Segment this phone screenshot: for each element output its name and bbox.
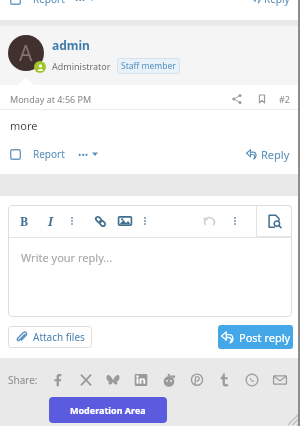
button[interactable]: More xyxy=(228,214,242,228)
staticText: B xyxy=(20,213,29,229)
button[interactable]: Insert image xyxy=(117,213,133,229)
staticText: Reply xyxy=(264,0,290,6)
staticText: more xyxy=(10,118,38,133)
button[interactable]: LinkedIn xyxy=(131,370,151,390)
button[interactable]: More text options xyxy=(65,214,79,228)
button[interactable]: Moderation Area xyxy=(49,397,167,423)
button[interactable]: Email xyxy=(270,370,290,390)
button[interactable]: Tumblr xyxy=(214,370,234,390)
staticText: Report xyxy=(33,147,65,161)
button[interactable]: Post reply xyxy=(218,325,293,349)
button[interactable]: WhatsApp xyxy=(242,370,262,390)
button[interactable]: Share xyxy=(230,92,244,106)
button[interactable]: Undo xyxy=(201,213,217,229)
button[interactable]: Italic xyxy=(42,213,58,229)
staticText: Reply xyxy=(261,147,290,162)
button[interactable]: Bluesky xyxy=(103,370,123,390)
button[interactable]: Reply xyxy=(246,147,290,162)
button[interactable]: Pinterest xyxy=(187,370,207,390)
button[interactable]: Reddit xyxy=(159,370,179,390)
staticText: #2 xyxy=(279,93,290,105)
button[interactable]: Insert link xyxy=(92,213,108,229)
button[interactable]: Preview xyxy=(256,205,292,237)
staticText: admin xyxy=(52,37,90,53)
staticText: Monday at 4:56 PM xyxy=(10,93,92,105)
staticText: Write your reply... xyxy=(21,250,113,265)
staticText: Share: xyxy=(8,373,38,387)
staticText: Post reply xyxy=(239,330,291,345)
staticText: Report xyxy=(33,0,65,6)
button[interactable]: Select post xyxy=(10,149,21,160)
staticText: I xyxy=(48,213,53,229)
button[interactable]: Bold xyxy=(16,213,32,229)
button[interactable]: Bookmark xyxy=(255,92,269,106)
staticText: Attach files xyxy=(33,330,85,344)
staticText: A xyxy=(19,39,33,68)
button[interactable]: X xyxy=(76,370,96,390)
button[interactable]: Staff member xyxy=(117,58,180,74)
button[interactable]: Report xyxy=(33,147,65,161)
staticText: ••• xyxy=(78,148,89,160)
staticText: ••• xyxy=(75,0,86,5)
button[interactable]: More insert options xyxy=(138,214,152,228)
staticText: Staff member xyxy=(121,60,176,72)
staticText: Administrator xyxy=(52,60,111,72)
button[interactable]: More options xyxy=(78,148,98,160)
staticText: Moderation Area xyxy=(70,404,146,416)
button[interactable]: Facebook xyxy=(48,370,68,390)
button[interactable]: Attach files xyxy=(8,326,92,348)
